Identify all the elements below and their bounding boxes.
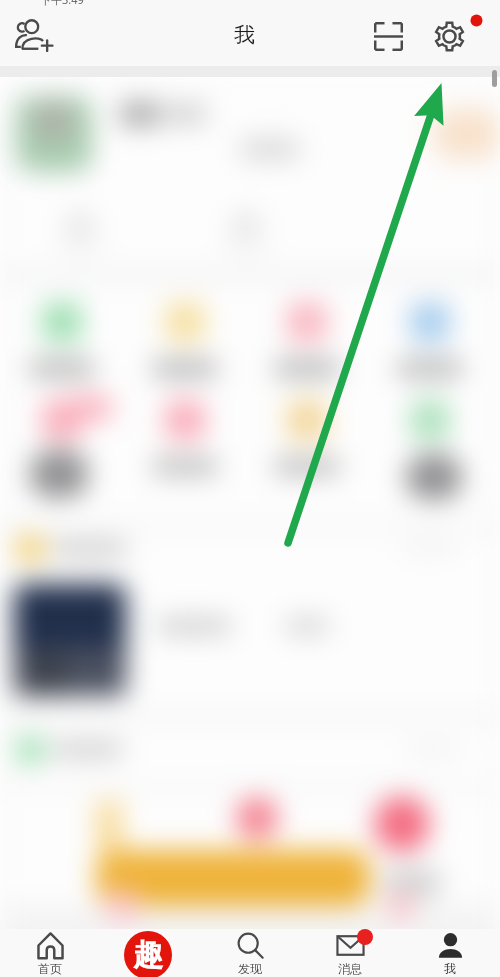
staticText: 首页 — [38, 961, 62, 976]
button[interactable]: 消息 — [300, 929, 400, 977]
button[interactable]: Add friend — [5, 7, 61, 63]
staticText: 发现 — [238, 961, 262, 976]
button[interactable]: 发现 — [200, 929, 300, 977]
button[interactable]: Scan — [362, 10, 414, 62]
button[interactable]: 我 — [400, 929, 500, 977]
staticText: 消息 — [338, 961, 362, 976]
staticText: 我 — [444, 961, 456, 976]
staticText: 我 — [234, 22, 255, 48]
button[interactable]: 首页 — [0, 929, 100, 977]
button[interactable]: Settings — [423, 10, 475, 62]
button[interactable]: 趣 Fun — [124, 931, 172, 977]
staticText: 下午3:49 — [40, 0, 84, 7]
staticText: 趣 — [133, 936, 163, 974]
